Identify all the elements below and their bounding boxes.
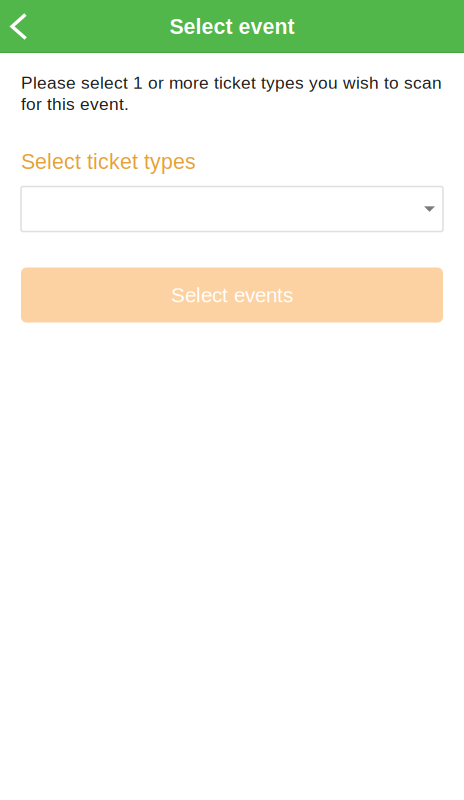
button[interactable]: Back [0,0,52,53]
staticText: Please select 1 or more ticket types you… [21,73,442,92]
button[interactable]: Select ticket types [21,187,443,232]
staticText: Select event [169,15,294,38]
button[interactable]: Select events [21,268,443,323]
staticText: Select events [171,283,293,307]
staticText: for this event. [21,94,129,114]
staticText: Select ticket types [21,150,196,173]
